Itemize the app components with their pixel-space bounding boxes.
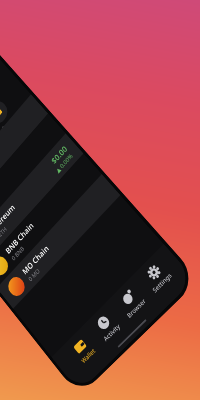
button[interactable]: Settings: [135, 253, 180, 300]
staticText: $0.00: [49, 143, 69, 166]
button[interactable]: Browser: [110, 279, 154, 326]
staticText: ▲ 0.00%: [54, 151, 75, 175]
staticText: 0 MO: [27, 266, 42, 283]
button[interactable]: MO Chain: [0, 174, 120, 309]
button[interactable]: Solana: [0, 113, 66, 247]
staticText: Ethereum: [0, 201, 17, 235]
staticText: Wallet: [80, 347, 97, 365]
staticText: Browser: [125, 297, 148, 320]
staticText: Activity: [102, 322, 122, 343]
staticText: MO Chain: [20, 242, 51, 276]
button[interactable]: Swap: [0, 95, 15, 132]
button[interactable]: BNB Chain: [0, 153, 102, 288]
button[interactable]: Bitcoin: [0, 94, 48, 228]
staticText: 0 ETH: [0, 225, 9, 242]
button[interactable]: Activity: [86, 304, 128, 349]
button[interactable]: Ethereum: [0, 133, 84, 267]
staticText: 0 BNB: [10, 244, 26, 262]
staticText: BNB Chain: [3, 219, 36, 256]
staticText: Swap: [1, 115, 12, 128]
staticText: Settings: [151, 271, 174, 295]
button[interactable]: Wallet: [63, 328, 104, 373]
